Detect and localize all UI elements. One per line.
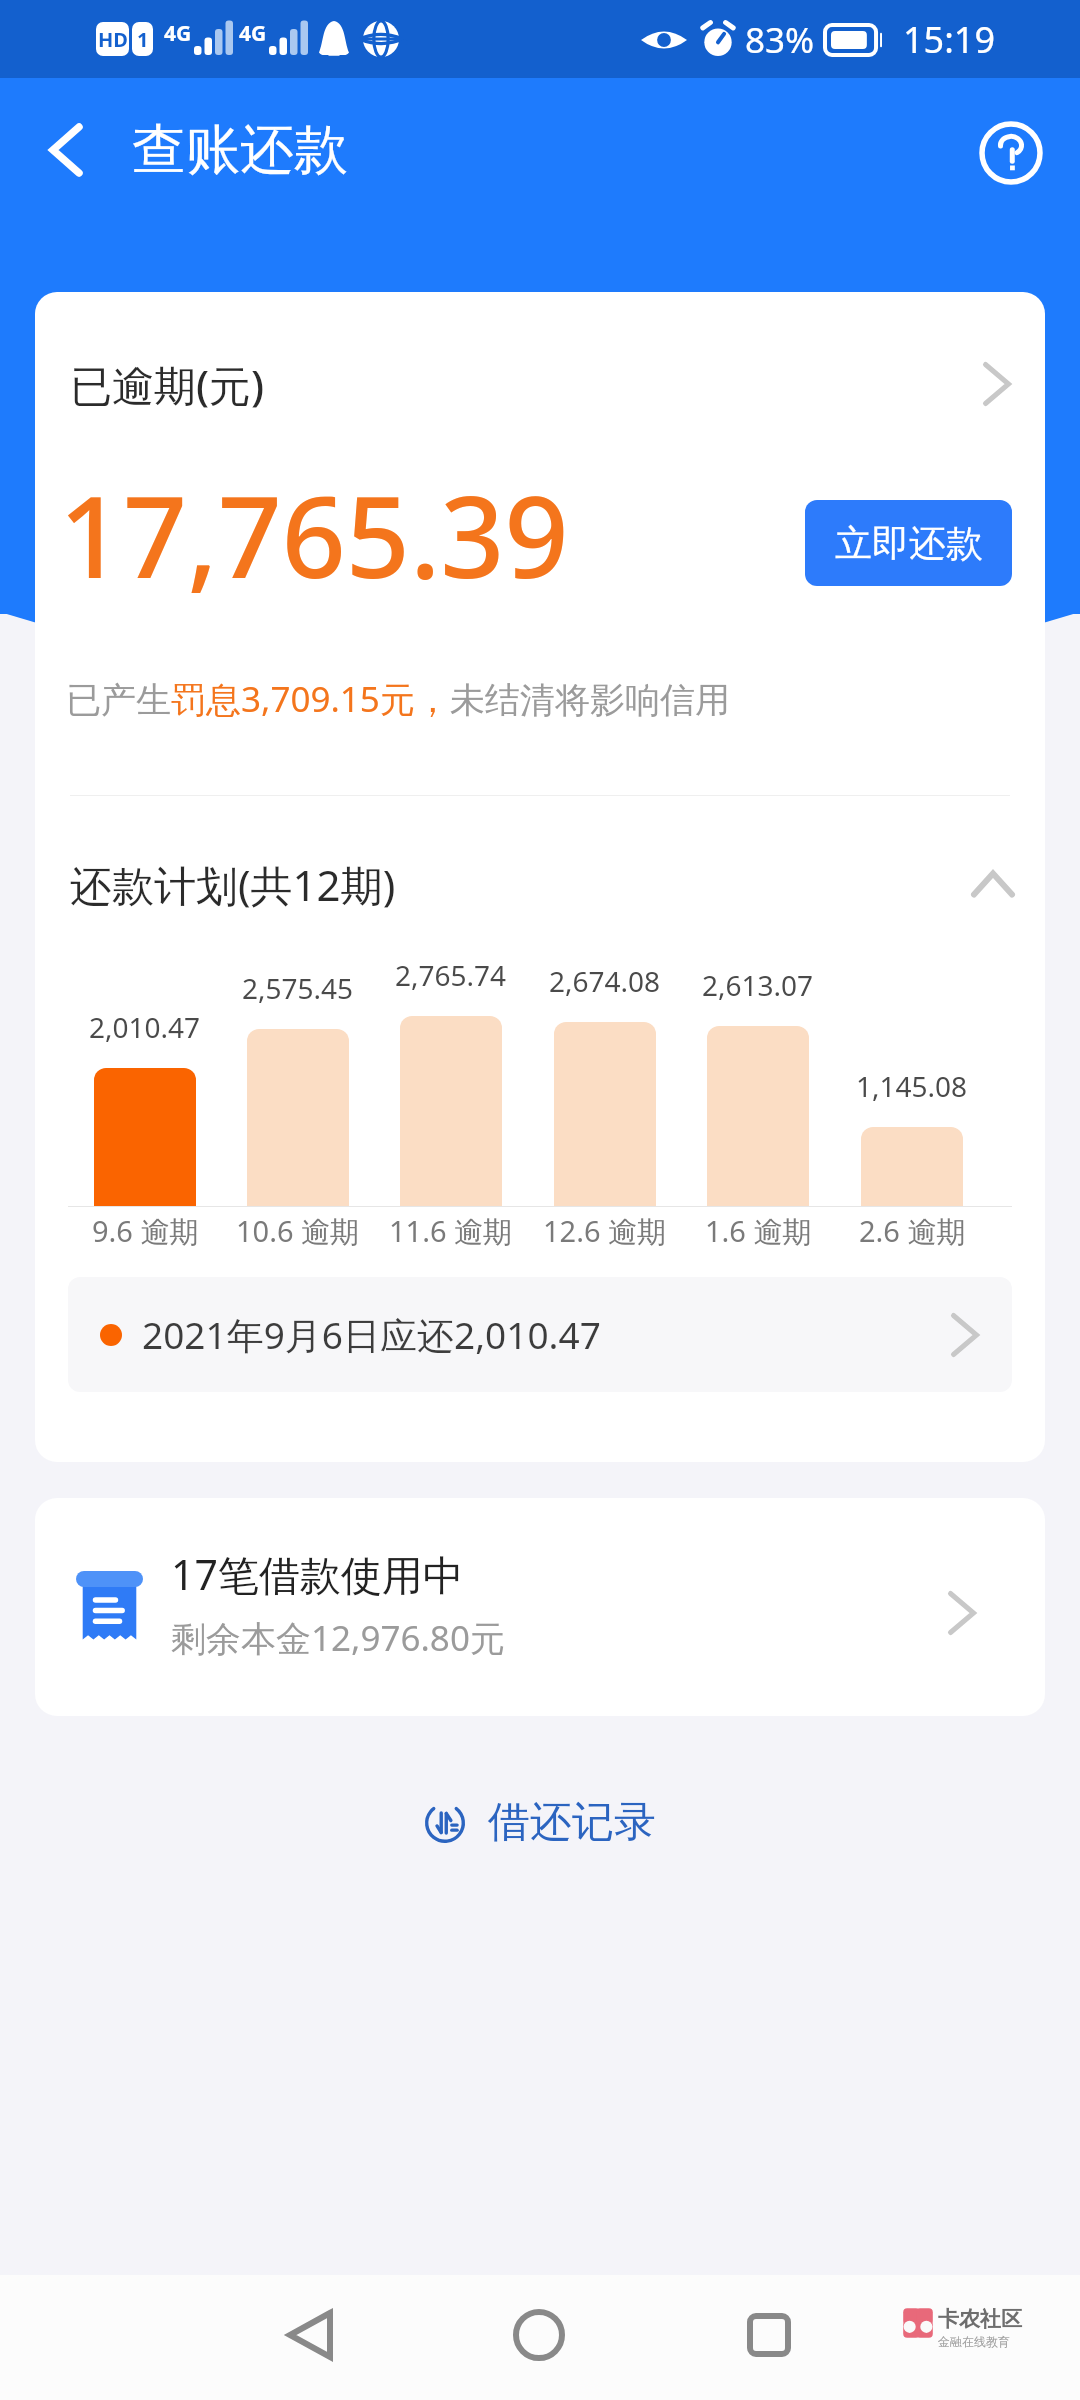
staticText: 1 [137, 26, 149, 53]
staticText: 15:19 [903, 15, 996, 64]
button[interactable]: 还款计划(共12期) [35, 844, 1045, 924]
staticText: 9.6 逾期 [92, 1211, 199, 1251]
staticText: 还款计划(共12期) [70, 856, 396, 913]
staticText: 10.6 逾期 [236, 1211, 360, 1251]
button[interactable]: 2021年9月6日应还2,010.47 [68, 1277, 1012, 1392]
button[interactable]: Help [966, 108, 1056, 198]
staticText: 2,010.47 [89, 1008, 201, 1046]
button[interactable]: Back [270, 2295, 350, 2375]
staticText: 2,674.08 [549, 962, 661, 1000]
staticText: 已产生罚息3,709.15元，未结清将影响信用 [66, 675, 730, 723]
staticText: 借还记录 [488, 1796, 656, 1849]
button[interactable]: Home [499, 2295, 579, 2375]
button[interactable]: 借还记录 [404, 1786, 676, 1859]
button[interactable]: 已逾期(元) [35, 346, 1045, 422]
staticText: HD [98, 26, 128, 53]
staticText: 2,575.45 [242, 969, 354, 1007]
staticText: 1,145.08 [856, 1067, 968, 1105]
staticText: 2.6 逾期 [859, 1211, 966, 1251]
staticText: 2,765.74 [395, 956, 507, 994]
staticText: 2,613.07 [702, 966, 814, 1004]
staticText: 11.6 逾期 [389, 1211, 513, 1251]
staticText: 查账还款 [132, 116, 348, 184]
button[interactable]: Back [26, 110, 106, 190]
staticText: 卡农社区 [938, 2306, 1022, 2332]
button[interactable]: 17笔借款使用中 [35, 1498, 1045, 1716]
staticText: 剩余本金12,976.80元 [171, 1614, 505, 1662]
staticText: 2021年9月6日应还2,010.47 [142, 1309, 601, 1360]
staticText: 17,765.39 [59, 458, 569, 611]
staticText: 已逾期(元) [70, 356, 265, 413]
staticText: 17笔借款使用中 [171, 1546, 464, 1602]
staticText: 83% [745, 16, 815, 64]
staticText: 12.6 逾期 [543, 1211, 667, 1251]
staticText: 金融在线教育 [938, 2334, 1010, 2349]
staticText: 立即还款 [835, 520, 983, 567]
staticText: 4G [239, 19, 267, 48]
button[interactable]: Recents [729, 2295, 809, 2375]
staticText: 1.6 逾期 [705, 1211, 812, 1251]
button[interactable]: 立即还款 [805, 500, 1012, 586]
staticText: 4G [164, 19, 192, 48]
